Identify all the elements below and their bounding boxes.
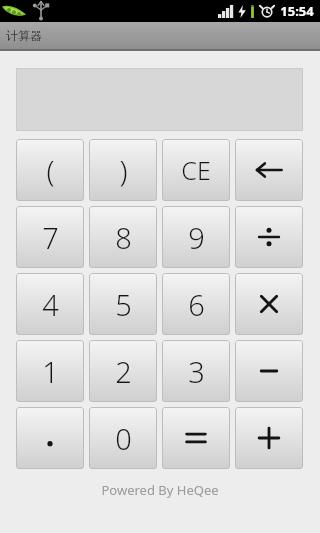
- staticText: (: [46, 151, 55, 190]
- button[interactable]: Backspace: [235, 139, 303, 201]
- staticText: CE: [181, 153, 211, 187]
- staticText: 4: [42, 285, 59, 324]
- staticText: 8: [115, 218, 132, 257]
- staticText: 7: [42, 218, 59, 257]
- button[interactable]: Divide: [235, 206, 303, 268]
- staticText: 2: [115, 352, 132, 391]
- staticText: 6: [188, 285, 205, 324]
- staticText: 计算器: [6, 28, 42, 43]
- button[interactable]: Minus: [235, 340, 303, 402]
- staticText: ): [119, 151, 128, 190]
- button[interactable]: 4: [16, 273, 84, 335]
- button[interactable]: 8: [89, 206, 157, 268]
- button[interactable]: 5: [89, 273, 157, 335]
- button[interactable]: 6: [162, 273, 230, 335]
- button[interactable]: 0: [89, 407, 157, 469]
- button[interactable]: 3: [162, 340, 230, 402]
- button[interactable]: Plus: [235, 407, 303, 469]
- staticText: Powered By HeQee: [101, 481, 219, 499]
- staticText: 3: [188, 352, 205, 391]
- staticText: 9: [188, 218, 205, 257]
- button[interactable]: 7: [16, 206, 84, 268]
- button[interactable]: ): [89, 139, 157, 201]
- button[interactable]: CE: [162, 139, 230, 201]
- button[interactable]: .: [16, 407, 84, 469]
- button[interactable]: (: [16, 139, 84, 201]
- button[interactable]: 2: [89, 340, 157, 402]
- staticText: 15:54: [280, 2, 314, 20]
- button[interactable]: Equals: [162, 407, 230, 469]
- staticText: 5: [115, 285, 132, 324]
- button[interactable]: 9: [162, 206, 230, 268]
- staticText: 0: [115, 419, 132, 458]
- button[interactable]: Multiply: [235, 273, 303, 335]
- button[interactable]: 1: [16, 340, 84, 402]
- staticText: 1: [42, 352, 59, 391]
